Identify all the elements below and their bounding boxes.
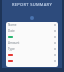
button[interactable] [6,58,58,64]
button[interactable]: Name [6,22,58,28]
button[interactable] [6,34,58,40]
staticText: REPORT SUMMARY [12,2,52,7]
staticText: Type [8,47,15,51]
staticText: Amount [8,41,20,45]
button[interactable]: Date [6,28,58,34]
button[interactable]: Amount [6,40,58,46]
button[interactable] [6,52,58,58]
button[interactable]: REPORT SUMMARY [0,0,64,9]
staticText: Date [8,29,15,33]
staticText: Name [8,23,17,27]
button[interactable]: Type [6,46,58,52]
